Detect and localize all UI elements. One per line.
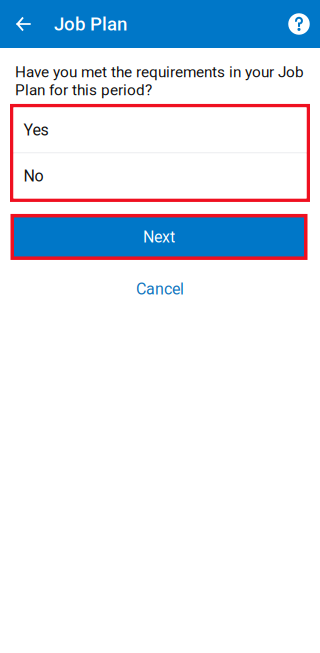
staticText: Job Plan	[54, 13, 127, 35]
button[interactable]: Cancel	[0, 280, 320, 298]
button[interactable]: Help	[278, 0, 320, 48]
staticText: Have you met the requirements in your Jo…	[15, 63, 304, 99]
button[interactable]: Next	[14, 217, 304, 256]
staticText: Yes	[23, 121, 48, 139]
staticText: Next	[143, 228, 175, 246]
staticText: No	[23, 167, 43, 185]
button[interactable]: Yes	[13, 107, 306, 152]
button[interactable]: No	[13, 153, 306, 198]
button[interactable]: Back	[0, 0, 54, 48]
staticText: Cancel	[136, 280, 184, 298]
